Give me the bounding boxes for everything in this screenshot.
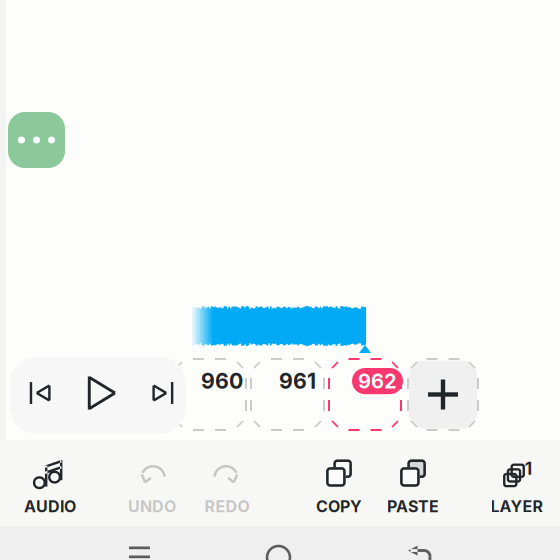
staticText: LAYER xyxy=(490,497,543,516)
button[interactable]: REDO xyxy=(189,450,265,522)
staticText: 962 xyxy=(358,369,397,393)
button[interactable]: More options xyxy=(8,112,65,168)
staticText: AUDIO xyxy=(24,497,76,516)
staticText: REDO xyxy=(204,497,249,516)
button[interactable]: PASTE xyxy=(375,450,451,522)
staticText: 1 xyxy=(525,458,532,479)
staticText: 960 xyxy=(201,368,243,394)
button[interactable]: AUDIO xyxy=(12,450,88,522)
button[interactable]: Next xyxy=(149,378,179,408)
button[interactable]: Back xyxy=(408,545,432,560)
button[interactable]: Play xyxy=(82,374,120,412)
staticText: UNDO xyxy=(128,497,176,516)
button[interactable]: 962 xyxy=(328,358,402,431)
button[interactable]: 1 xyxy=(479,450,555,522)
button[interactable]: Add page xyxy=(407,358,479,431)
button[interactable]: 961 xyxy=(250,358,325,431)
staticText: PASTE xyxy=(387,497,439,516)
button[interactable]: 960 xyxy=(172,358,247,431)
staticText: COPY xyxy=(316,497,362,516)
staticText: 961 xyxy=(279,368,316,394)
button[interactable]: COPY xyxy=(301,450,377,522)
button[interactable]: Home xyxy=(267,546,290,560)
button[interactable]: Previous xyxy=(24,378,54,408)
button[interactable]: UNDO xyxy=(114,450,190,522)
button[interactable]: Recent apps xyxy=(129,546,150,560)
